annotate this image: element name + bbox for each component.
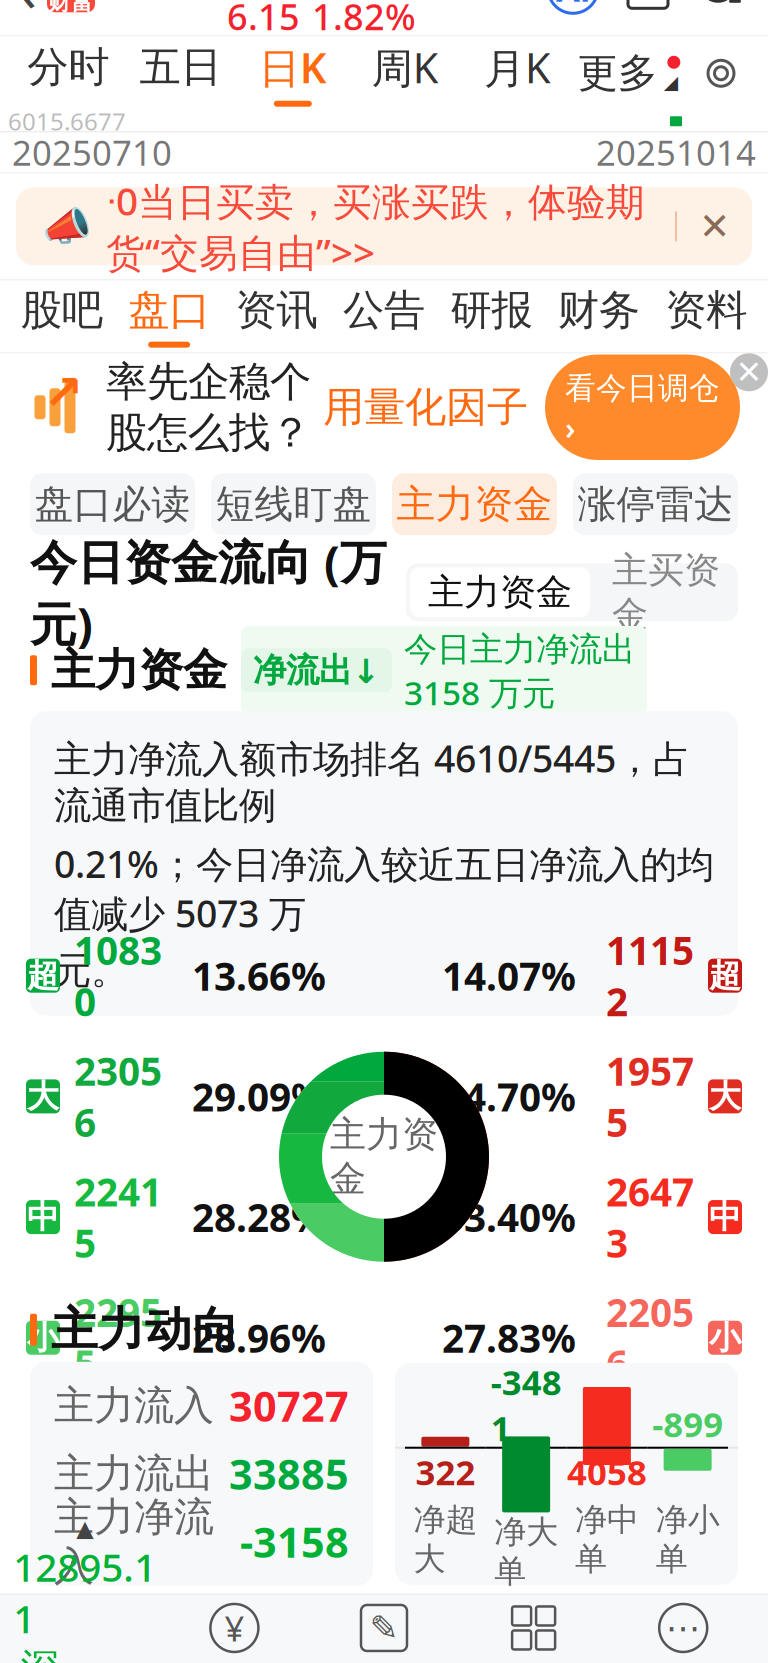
staticText: 28.28% [192, 1191, 326, 1243]
staticText: 净中单 [575, 1500, 639, 1579]
staticText: 12895.11 [13, 1541, 156, 1644]
button[interactable]: 广告：用量化因子 [0, 353, 768, 461]
button[interactable]: 主力资金 [406, 563, 594, 621]
staticText: 📣 [42, 203, 92, 249]
staticText: 1.82% [312, 0, 416, 40]
staticText: 20251014 [596, 129, 756, 175]
button[interactable]: 📣 [0, 173, 768, 279]
button[interactable]: 深证指数 [10, 1515, 160, 1663]
button[interactable]: 五日 [124, 36, 237, 110]
staticText: 元。 [54, 948, 128, 994]
button[interactable]: 公告 [330, 280, 438, 352]
button[interactable]: 月K [461, 36, 574, 110]
button[interactable]: 财务 [545, 280, 652, 352]
button[interactable]: 研报 [438, 280, 545, 352]
staticText: 33885 [229, 1446, 349, 1501]
button[interactable]: 中国天楹 [220, 0, 422, 40]
staticText: 26473 [606, 1166, 694, 1268]
button[interactable]: 周K [349, 36, 461, 110]
staticText: 东方 财富 [48, 0, 94, 16]
staticText: Ai [556, 0, 590, 11]
staticText: 用量化因子 [323, 382, 528, 433]
staticText: 涨停雷达 [577, 480, 733, 528]
button[interactable]: 资料 [653, 280, 760, 352]
staticText: 净小单 [656, 1500, 720, 1579]
staticText: 月K [484, 40, 551, 95]
button[interactable]: 主买资金 [594, 567, 738, 617]
staticText: 11152 [606, 924, 694, 1027]
staticText: ⋯ [666, 1608, 701, 1648]
staticText: 主力动向 [51, 1301, 239, 1358]
staticText: 净流出↓ [253, 650, 380, 691]
staticText: 23056 [74, 1045, 162, 1148]
staticText: 五日 [139, 42, 221, 93]
button[interactable]: 资讯 [223, 280, 330, 352]
staticText: 率先企稳个股怎么找？ [106, 356, 311, 458]
staticText: 短线盯盘 [215, 480, 371, 528]
button[interactable]: 分享 [624, 0, 672, 12]
staticText: 主买资金 [612, 548, 720, 636]
button[interactable]: 股吧 [8, 280, 115, 352]
staticText: 股吧 [21, 285, 103, 336]
button[interactable]: 短线盯盘 [211, 473, 376, 535]
staticText: 中 [709, 1197, 741, 1237]
staticText: -3158 [240, 1514, 349, 1569]
staticText: 28.96% [192, 1312, 326, 1363]
button[interactable]: ¥ [160, 1602, 309, 1663]
staticText: 净超大 [413, 1500, 477, 1579]
staticText: 6015.6677 [8, 105, 126, 137]
staticText: 主力流入 [54, 1381, 214, 1430]
staticText: 更多 [578, 49, 658, 98]
button[interactable]: AI 助手 [548, 0, 598, 13]
staticText: 小 [709, 1318, 741, 1357]
staticText: 主力流出 [54, 1449, 214, 1498]
staticText: -899 [652, 1401, 723, 1447]
staticText: 20250710 [12, 129, 172, 175]
staticText: 周K [372, 40, 439, 95]
staticText: ᐧ0当日买卖，买涨买跌，体验期货“交易自由”>> [106, 175, 645, 278]
button[interactable]: 日K [237, 36, 349, 110]
staticText: 净大单 [494, 1512, 558, 1591]
staticText: 今日主力净流出 3158 万元 [404, 626, 635, 714]
staticText [441, 1394, 449, 1437]
button[interactable]: 搜索 [698, 0, 746, 12]
staticText: 日K [259, 40, 327, 95]
staticText: 超 [27, 956, 59, 995]
staticText: ✕ [735, 354, 762, 390]
staticText: 中 [27, 1197, 59, 1237]
staticText: 主力净流入额市场排名 4610/5445，占流通市值比例 [54, 733, 690, 829]
staticText: 22955 [74, 1286, 162, 1389]
staticText: 24.70% [442, 1071, 576, 1122]
button[interactable]: ⋯ [608, 1602, 758, 1663]
staticText: 公告 [343, 285, 425, 336]
staticText: 33.40% [442, 1191, 576, 1243]
button[interactable]: 设置 [686, 36, 756, 110]
staticText: 看今日调仓 › [565, 367, 720, 448]
staticText: 研报 [450, 285, 532, 336]
staticText: 30727 [229, 1378, 349, 1433]
staticText: 6.15 [227, 0, 300, 40]
staticText: 财务 [558, 285, 640, 336]
button[interactable]: 盘口 [115, 280, 223, 352]
button[interactable]: 功能 [459, 1602, 608, 1663]
staticText: ‹ [18, 0, 37, 29]
button[interactable]: ✎ [309, 1602, 459, 1663]
staticText: 资讯 [236, 285, 318, 336]
staticText: ↗ [638, 0, 672, 5]
staticText: ◢ [664, 72, 678, 93]
staticText: 4058 [567, 1449, 647, 1495]
staticText: 资料 [665, 285, 747, 336]
staticText: ✎ [369, 1608, 398, 1648]
button[interactable]: 分时 [12, 36, 124, 110]
staticText: 主力资金 [428, 570, 572, 614]
button[interactable]: 盘口必读 [30, 473, 195, 535]
button[interactable]: 涨停雷达 [573, 473, 738, 535]
staticText: 超 [709, 956, 741, 995]
button[interactable]: 更多 [574, 36, 686, 110]
button[interactable]: 主力资金 [392, 473, 557, 535]
button[interactable]: 返回 东方财富 [0, 0, 95, 37]
staticText: 29.09% [192, 1071, 326, 1122]
